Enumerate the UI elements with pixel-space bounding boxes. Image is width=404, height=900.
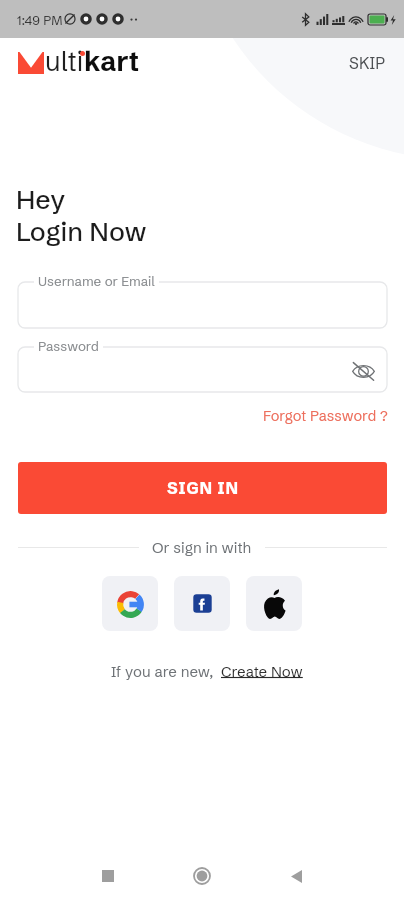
staticText: ulti: [45, 45, 84, 78]
button[interactable]: Sign in with Google: [102, 576, 158, 631]
button[interactable]: Sign in with Apple: [246, 576, 302, 631]
staticText: kart: [84, 45, 140, 78]
staticText: 1:49 PM: [17, 12, 63, 28]
button[interactable]: SKIP: [349, 53, 385, 73]
button[interactable]: Show password: [352, 361, 375, 381]
staticText: Or sign in with: [152, 538, 252, 557]
staticText: SIGN IN: [167, 478, 239, 498]
staticText: Login Now: [16, 215, 147, 248]
staticText: Password: [38, 338, 99, 355]
button[interactable]: Recents: [92, 860, 124, 892]
staticText: Create Now: [221, 662, 303, 681]
button[interactable]: Forgot Password ?: [263, 407, 388, 425]
staticText: Username or Email: [38, 273, 155, 290]
staticText: If you are new,: [111, 662, 221, 681]
button[interactable]: SIGN IN: [18, 462, 387, 514]
staticText: Hey: [16, 183, 66, 216]
button[interactable]: Back: [280, 860, 312, 892]
button[interactable]: Sign in with Facebook: [174, 576, 230, 631]
button[interactable]: Create Now: [221, 662, 303, 681]
staticText: Forgot Password ?: [263, 407, 388, 425]
staticText: SKIP: [349, 53, 385, 73]
button[interactable]: Home: [186, 860, 218, 892]
